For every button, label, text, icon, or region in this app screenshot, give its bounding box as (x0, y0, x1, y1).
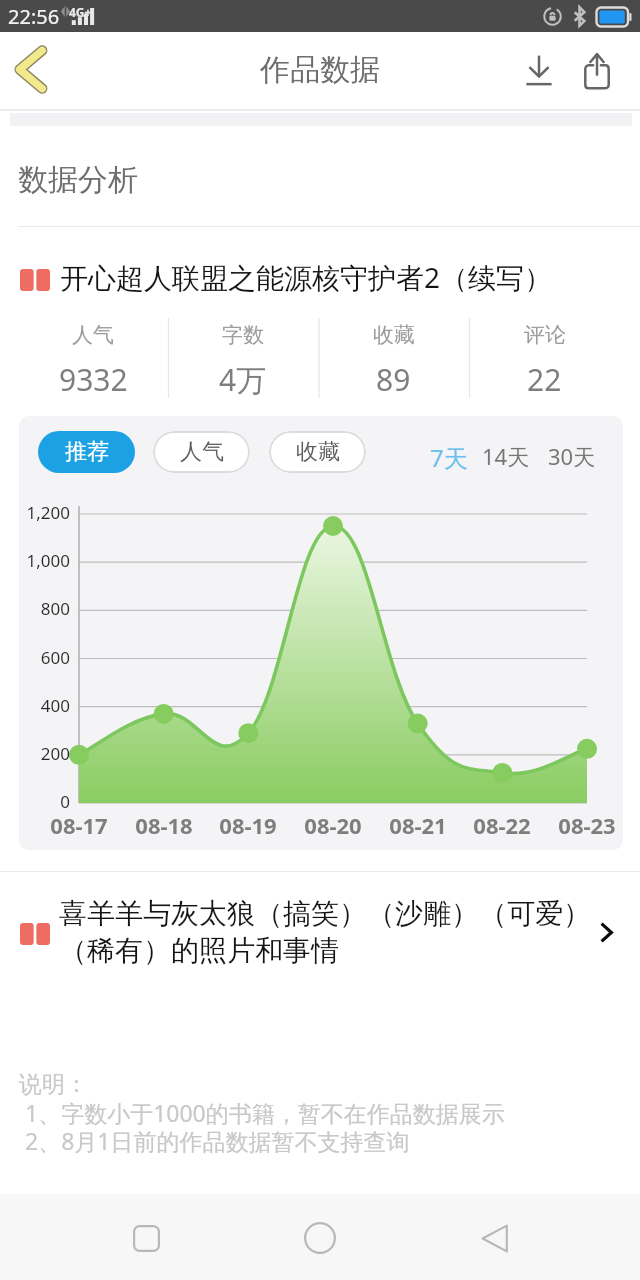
staticText: 400 (19, 694, 70, 717)
button[interactable]: Download (510, 32, 568, 109)
staticText: 4G+ (69, 4, 92, 20)
staticText: 08-17 (34, 810, 124, 840)
button[interactable]: 喜羊羊与灰太狼（搞笑）（沙雕）（可爱）（稀有）的照片和事情 (0, 872, 640, 984)
staticText: 600 (19, 646, 70, 669)
staticText: 200 (19, 742, 70, 765)
staticText: 1,200 (19, 501, 70, 524)
button[interactable]: Home (277, 1194, 363, 1280)
staticText: 08-18 (119, 810, 209, 840)
staticText: 2、8月1日前的作品数据暂不支持查询 (25, 1125, 410, 1156)
button[interactable]: Back (0, 32, 64, 109)
staticText: 1,000 (19, 549, 70, 572)
staticText: 22 (527, 359, 562, 398)
staticText: 22:56 (8, 3, 60, 30)
staticText: 08-20 (288, 810, 378, 840)
staticText: 开心超人联盟之能源核守护者2（续写） (60, 258, 553, 292)
staticText: 人气 (72, 322, 114, 348)
staticText: 评论 (524, 322, 566, 348)
staticText: 数据分析 (18, 161, 138, 199)
staticText: 08-21 (373, 810, 463, 840)
button[interactable]: 7天 (430, 441, 468, 474)
staticText: 9332 (59, 359, 128, 398)
staticText: 收藏 (373, 322, 415, 348)
staticText: 推荐 (65, 438, 109, 466)
staticText: 08-23 (542, 810, 623, 840)
button[interactable]: 14天 (482, 441, 530, 471)
staticText: 08-22 (457, 810, 547, 840)
staticText: 说明： (19, 1070, 88, 1099)
staticText: 喜羊羊与灰太狼（搞笑）（沙雕）（可爱）（稀有）的照片和事情 (59, 896, 595, 968)
button[interactable]: 人气 (153, 431, 250, 473)
staticText: 4万 (219, 359, 267, 398)
staticText: 08-19 (203, 810, 293, 840)
button[interactable]: Back (451, 1194, 537, 1280)
staticText: 字数 (222, 322, 264, 348)
button[interactable]: 收藏 (269, 431, 366, 473)
button[interactable]: 30天 (548, 441, 596, 471)
button[interactable]: Recent apps (103, 1194, 189, 1280)
staticText: 800 (19, 597, 70, 620)
staticText: 人气 (180, 438, 224, 466)
staticText: 1、字数小于1000的书籍，暂不在作品数据展示 (25, 1097, 505, 1128)
button[interactable]: 推荐 (38, 431, 135, 473)
staticText: 作品数据 (260, 51, 380, 89)
staticText: 0 (19, 790, 70, 813)
button[interactable]: Share (568, 32, 626, 109)
staticText: 收藏 (296, 438, 340, 466)
staticText: 89 (376, 359, 411, 398)
